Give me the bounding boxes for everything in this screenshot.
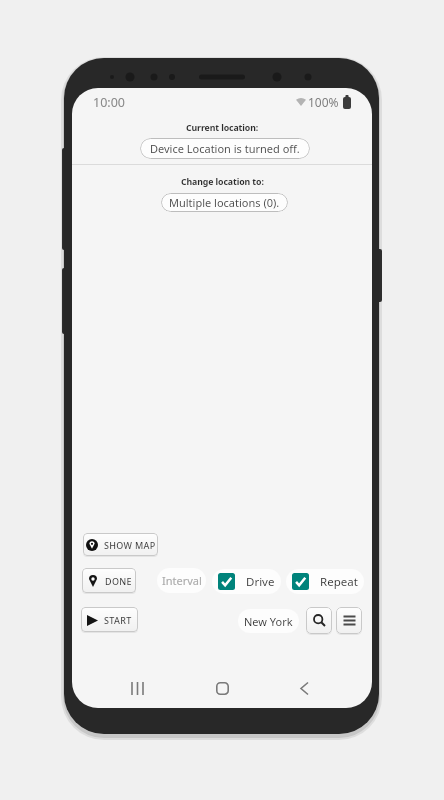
staticText: Multiple locations (0). <box>169 195 280 210</box>
staticText: Device Location is turned off. <box>150 141 300 156</box>
button[interactable] <box>300 682 308 695</box>
staticText: New York <box>244 614 293 629</box>
staticText: 10:00 <box>93 94 125 111</box>
button[interactable]: New York <box>238 609 299 633</box>
button[interactable]: Device Location is turned off. <box>140 138 310 159</box>
button[interactable]: SHOW MAP <box>83 533 158 556</box>
button[interactable] <box>336 607 362 634</box>
button[interactable]: Multiple locations (0). <box>161 193 288 212</box>
button[interactable]: DONE <box>82 568 136 593</box>
staticText: Interval <box>162 573 202 588</box>
button[interactable] <box>131 682 145 695</box>
staticText: START <box>104 614 132 626</box>
staticText: SHOW MAP <box>104 539 156 551</box>
button[interactable] <box>216 682 229 695</box>
button[interactable]: Repeat <box>286 569 364 594</box>
staticText: Repeat <box>320 574 358 590</box>
staticText: DONE <box>105 575 132 587</box>
button[interactable] <box>306 607 332 634</box>
staticText: Current location: <box>186 122 259 134</box>
button[interactable]: Interval <box>157 568 206 593</box>
button[interactable]: Drive <box>212 569 281 594</box>
button[interactable]: START <box>81 607 138 632</box>
staticText: 100% <box>308 94 339 110</box>
staticText: Change location to: <box>181 176 264 188</box>
staticText: Drive <box>246 574 275 590</box>
